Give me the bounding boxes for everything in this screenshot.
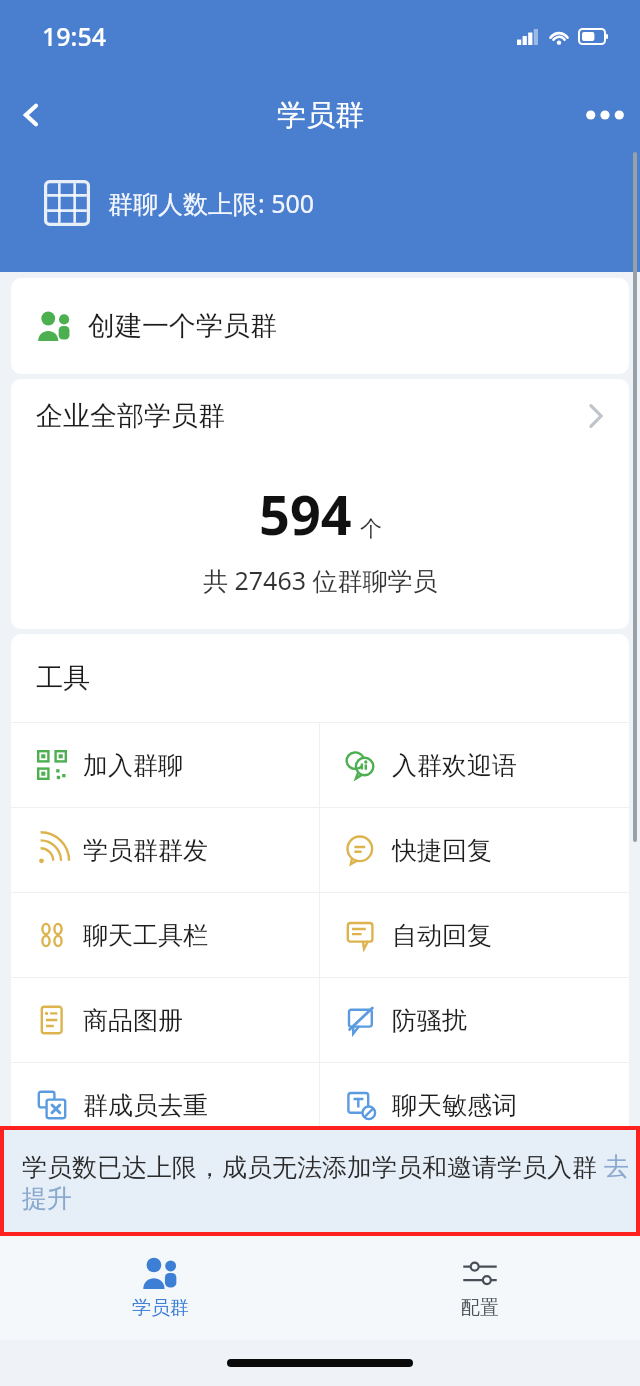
staticText: 聊天敏感词 [392,1090,517,1121]
staticText: 防骚扰 [392,1005,467,1036]
button[interactable]: 学员群 [0,1236,320,1340]
staticText: 学员群 [277,97,364,134]
staticText: 个 [360,515,382,543]
staticText: 工具 [36,661,90,695]
staticText: 去 [604,1151,618,1182]
staticText: 学员群 [132,1296,189,1320]
button[interactable]: 企业全部学员群 [11,379,629,453]
staticText: 创建一个学员群 [88,309,277,343]
staticText: 19:54 [42,19,107,53]
staticText: 学员群群发 [83,835,208,866]
button[interactable]: 学员群群发 [11,808,319,892]
staticText: 群聊人数上限: 500 [108,186,315,220]
staticText: 群成员去重 [83,1090,208,1121]
button[interactable]: 聊天敏感词 [320,1063,629,1147]
staticText: 配置 [461,1296,499,1320]
button[interactable]: 学员数已达上限，成员无法添加学员和邀请学员入群 [0,1126,640,1236]
staticText: 学员数已达上限，成员无法添加学员和邀请学员入群 [22,1149,604,1183]
button[interactable]: Back [0,83,64,147]
button[interactable]: 创建一个学员群 [11,278,629,374]
staticText: 加入群聊 [83,750,183,781]
staticText: 聊天工具栏 [83,920,208,951]
button[interactable]: 配置 [320,1236,640,1340]
button[interactable]: 加入群聊 [11,723,319,807]
button[interactable]: 入群欢迎语 [320,723,629,807]
button[interactable]: 防骚扰 [320,978,629,1062]
staticText: 商品图册 [83,1005,183,1036]
button[interactable]: 快捷回复 [320,808,629,892]
staticText: 共 27463 位群聊学员 [203,563,438,597]
staticText: 自动回复 [392,920,492,951]
staticText: 594 [259,477,352,551]
staticText: 企业全部学员群 [36,399,225,433]
staticText: 入群欢迎语 [392,750,517,781]
staticText: 快捷回复 [392,835,492,866]
staticText: 提升 [22,1183,72,1214]
button[interactable]: 聊天工具栏 [11,893,319,977]
button[interactable]: 自动回复 [320,893,629,977]
button[interactable]: More options [570,80,640,150]
button[interactable]: 商品图册 [11,978,319,1062]
button[interactable]: 群成员去重 [11,1063,319,1147]
